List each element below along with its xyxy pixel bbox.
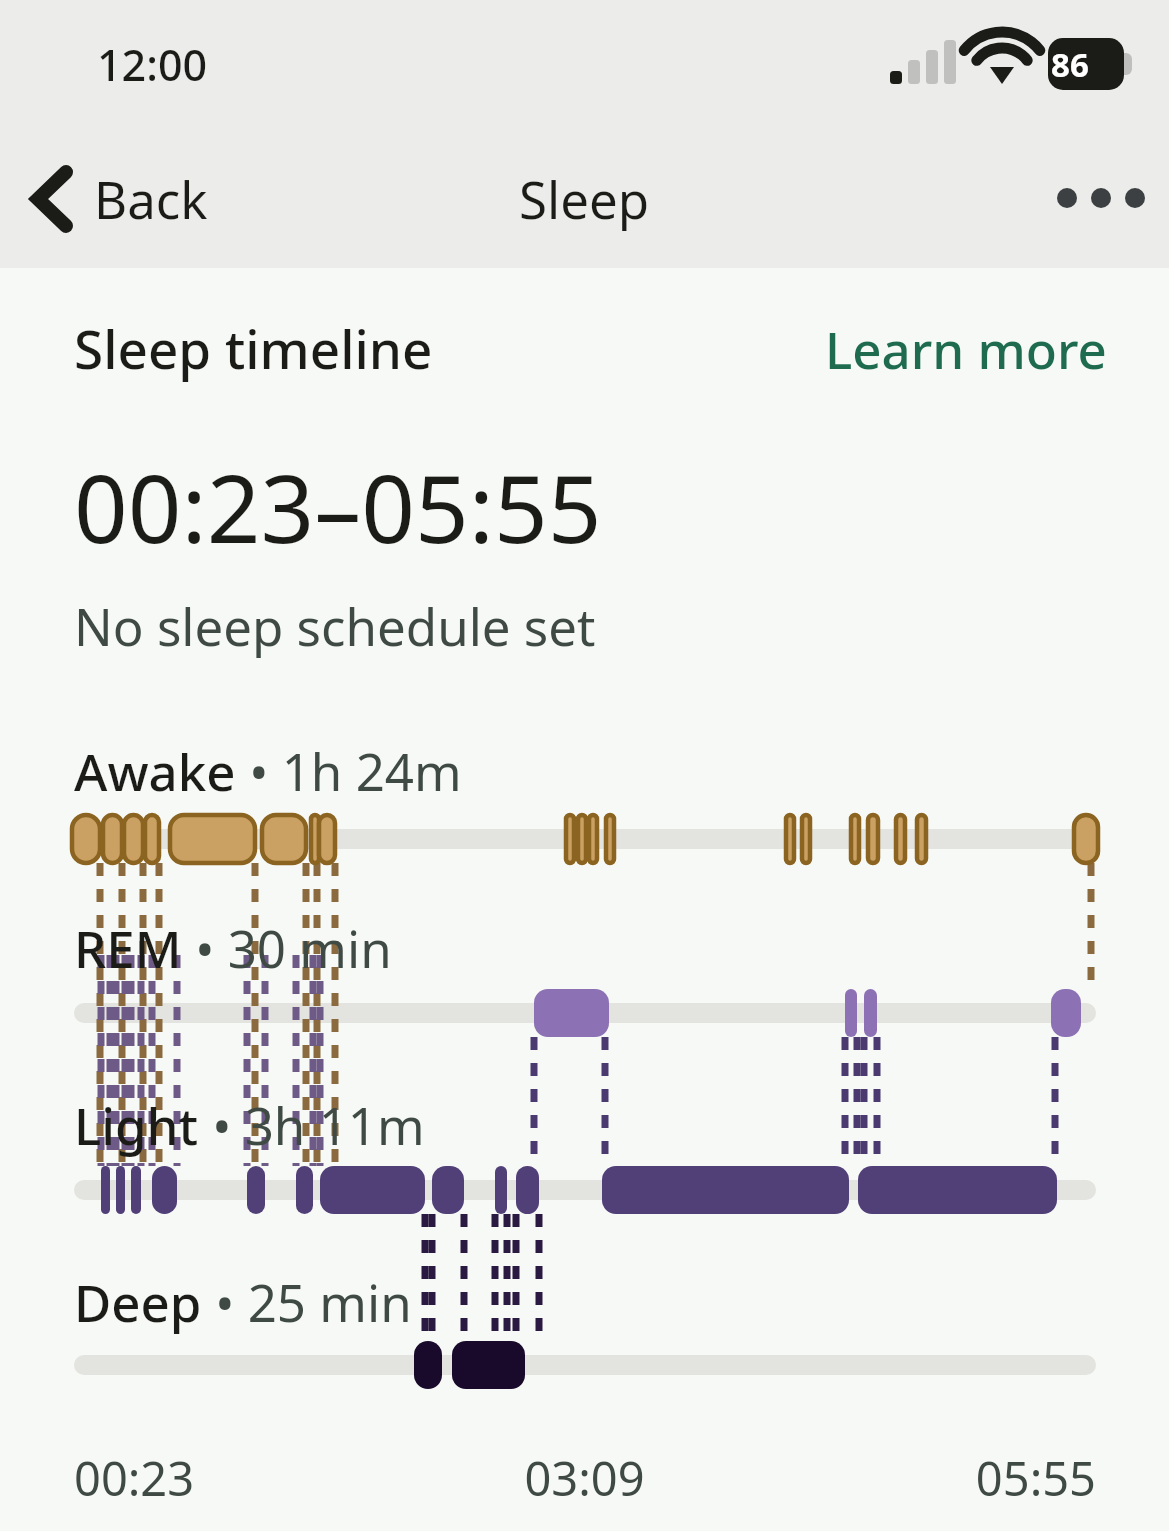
other: Back [28, 167, 78, 231]
staticText: 03:09 [0, 1446, 1169, 1510]
staticText: • 3h 11m [199, 1090, 425, 1159]
button[interactable]: More options [1033, 158, 1169, 238]
staticText: 00:23 [74, 1446, 195, 1510]
staticText: Back [94, 164, 208, 233]
staticText: • 25 min [202, 1267, 412, 1336]
staticText: Awake [74, 736, 236, 805]
staticText: Sleep [519, 164, 650, 233]
staticText: 86 [1051, 42, 1089, 87]
staticText: 00:23–05:55 [74, 443, 602, 571]
button[interactable]: Back [0, 152, 234, 245]
button[interactable]: Learn more [825, 314, 1107, 383]
staticText: Deep [74, 1267, 202, 1336]
staticText: 12:00 [97, 35, 208, 94]
staticText: 05:55 [0, 1446, 1096, 1510]
staticText: Sleep timeline [74, 312, 433, 384]
staticText: • 1h 24m [236, 736, 462, 805]
staticText: Light [74, 1090, 199, 1159]
staticText: • 30 min [182, 913, 392, 982]
staticText: REM [74, 913, 182, 982]
staticText: Learn more [825, 314, 1107, 383]
staticText: No sleep schedule set [74, 591, 596, 660]
